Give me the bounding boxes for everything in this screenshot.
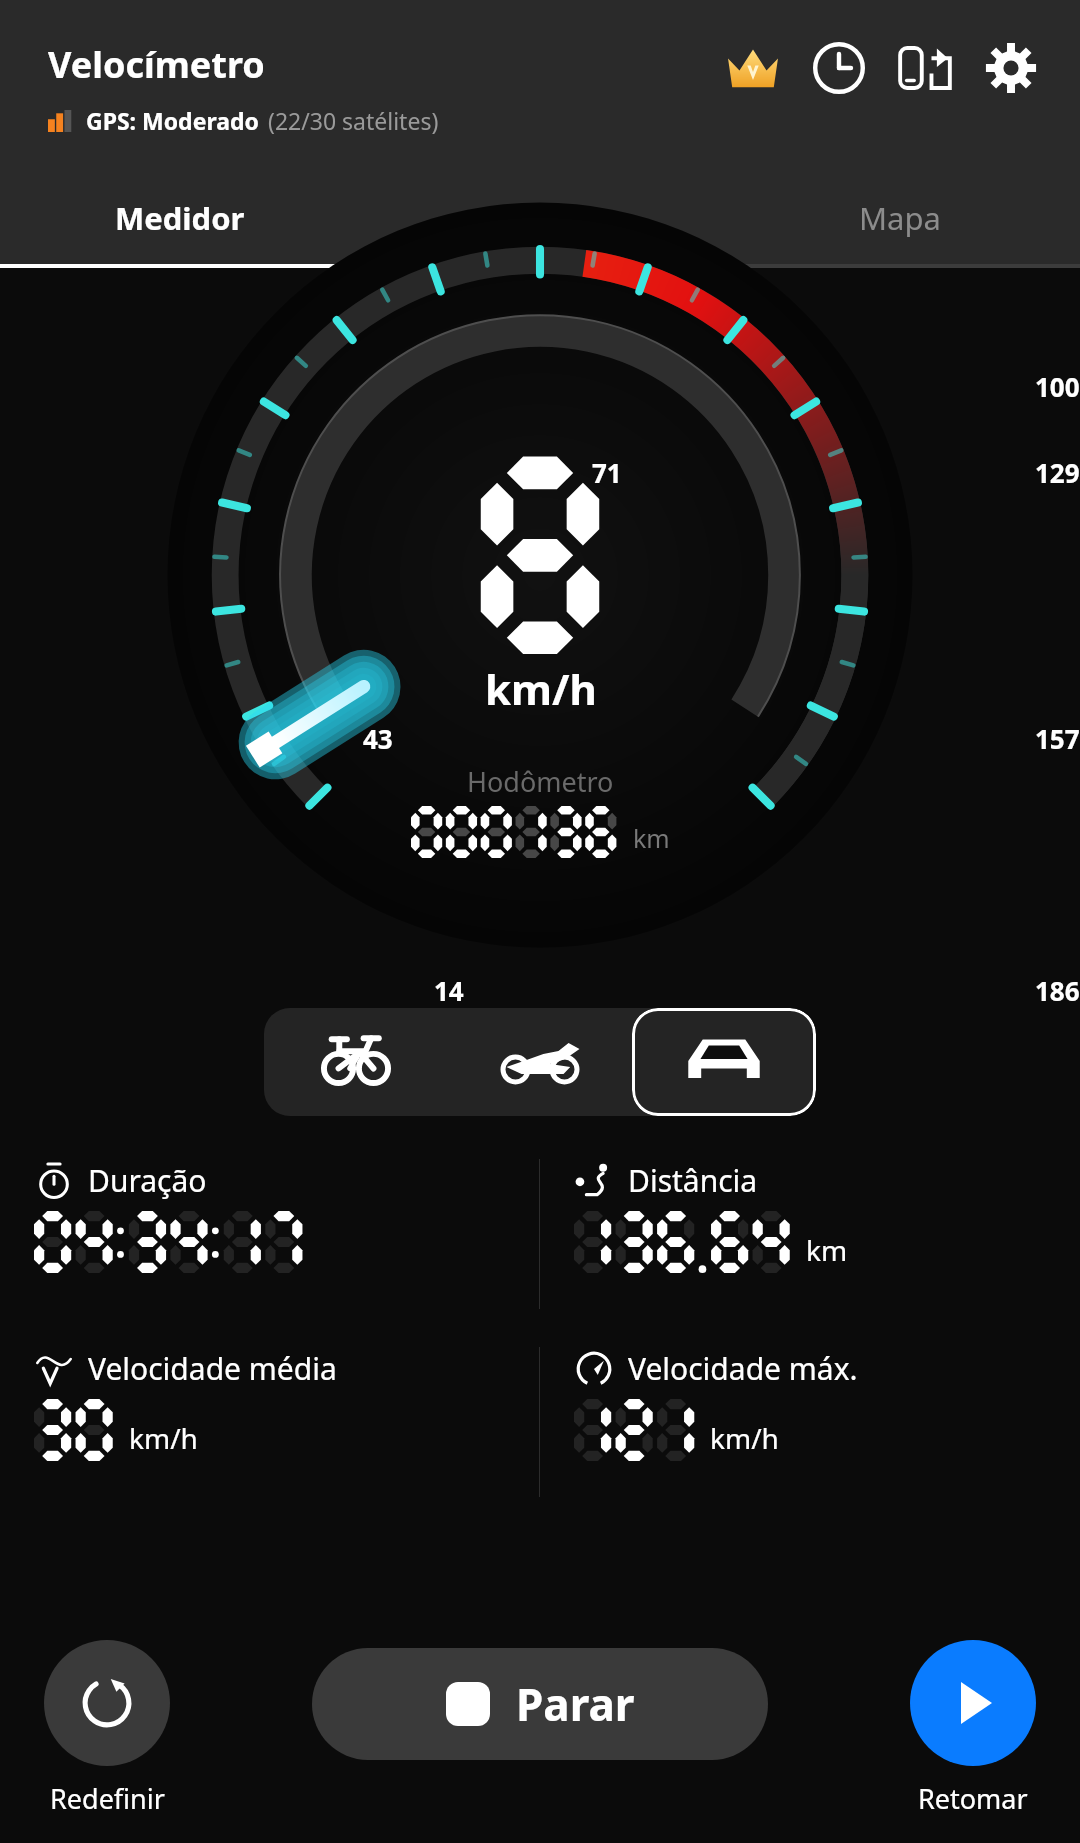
staticText: Distância (628, 1160, 758, 1201)
button[interactable]: Redefinir (44, 1640, 170, 1817)
staticText: Duração (88, 1160, 207, 1201)
staticText: 71 (592, 455, 622, 490)
staticText: 186 (1035, 973, 1080, 1008)
staticText: Mapa (859, 197, 941, 239)
button[interactable]: Duração (0, 1140, 539, 1328)
staticText: Medidor (115, 197, 245, 239)
button[interactable]: Motorcycle (448, 1008, 632, 1116)
button[interactable]: Velocidade máx. (540, 1328, 1080, 1516)
button[interactable]: Medidor (0, 172, 360, 264)
button[interactable]: Settings (968, 28, 1054, 108)
staticText: km (633, 821, 670, 855)
button[interactable]: Car (632, 1008, 816, 1116)
staticText: Hodômetro (467, 763, 614, 800)
button[interactable]: Digital (360, 172, 720, 264)
staticText: km/h (485, 660, 597, 717)
staticText: km/h (710, 1419, 779, 1457)
staticText: Velocímetro (48, 40, 265, 89)
button[interactable]: Distância (540, 1140, 1080, 1328)
staticText: 43 (363, 721, 393, 756)
staticText: 129 (1035, 455, 1080, 490)
staticText: Redefinir (50, 1780, 165, 1817)
staticText: 100 (1035, 369, 1080, 404)
staticText: km/h (129, 1419, 198, 1457)
staticText: Velocidade máx. (628, 1348, 858, 1389)
staticText: 14 (434, 973, 464, 1008)
button[interactable]: Velocidade média (0, 1328, 539, 1516)
button[interactable]: Bicycle (264, 1008, 448, 1116)
staticText: Retomar (918, 1780, 1028, 1817)
staticText: 157 (1035, 721, 1080, 756)
staticText: (22/30 satélites) (268, 105, 439, 136)
staticText: km (806, 1231, 848, 1269)
staticText: GPS: Moderado (86, 105, 259, 136)
button[interactable]: History (796, 28, 882, 108)
button[interactable]: Rotate screen (882, 28, 968, 108)
button[interactable]: Parar (312, 1648, 768, 1760)
staticText: Parar (516, 1674, 635, 1734)
staticText: Velocidade média (88, 1348, 337, 1389)
button[interactable]: Retomar (910, 1640, 1036, 1817)
staticText: Digital (493, 197, 588, 239)
button[interactable]: Premium (710, 28, 796, 108)
button[interactable]: Mapa (720, 172, 1080, 264)
